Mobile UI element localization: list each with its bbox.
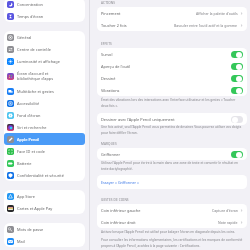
staticText: App Store [17, 194, 35, 199]
button[interactable]: Pincement [97, 7, 247, 19]
button[interactable]: Accessibilité [4, 97, 85, 109]
button[interactable]: Fond d'écran [4, 109, 85, 121]
staticText: Une fois activé, seul l'Apple Pencil vou… [101, 125, 247, 135]
button[interactable]: Activé [231, 63, 243, 70]
staticText: Batterie [17, 161, 32, 166]
button[interactable]: Concentration [4, 0, 85, 10]
staticText: Dessiner avec l'Apple Pencil uniquement [101, 117, 175, 122]
button[interactable]: Cartes et Apple Pay [4, 202, 85, 214]
staticText: Confidentialité et sécurité [17, 173, 64, 178]
staticText: Concentration [17, 2, 43, 7]
staticText: Utilisez l'Apple Pencil pour écrire à la… [101, 161, 247, 171]
staticText: Coin inférieur gauche [101, 208, 141, 213]
button[interactable]: Aperçu de l'outil [97, 60, 247, 72]
staticText: Vibrations [101, 88, 120, 93]
button[interactable]: Apple Pencil [4, 133, 85, 145]
staticText: Toucher 2 fois [101, 23, 127, 28]
staticText: GESTES DE COINS [101, 198, 129, 202]
button[interactable]: Survol [97, 48, 247, 60]
staticText: Siri et recherche [17, 125, 47, 130]
staticText: Aperçu de l'outil [101, 64, 131, 69]
button[interactable]: Essayer « Griffonner » [97, 175, 247, 189]
staticText: Fond d'écran [17, 113, 41, 118]
staticText: Cartes et Apple Pay [17, 206, 53, 211]
staticText: Mail [17, 239, 25, 244]
staticText: Capture d'écran [212, 208, 238, 213]
button[interactable]: Face ID et code [4, 145, 85, 157]
staticText: Général [17, 35, 32, 40]
button[interactable]: Désactivé [231, 116, 243, 123]
button[interactable]: Activé [231, 51, 243, 58]
button[interactable]: Écran d'accueil et bibliothèque d'apps [4, 67, 85, 85]
button[interactable]: Luminosité et affichage [4, 55, 85, 67]
button[interactable]: App Store [4, 190, 85, 202]
button[interactable]: Mots de passe [4, 223, 85, 235]
staticText: Essayer « Griffonner » [101, 180, 139, 185]
staticText: Note rapide [218, 220, 238, 225]
button[interactable]: Activé [231, 75, 243, 82]
button[interactable]: Activé [231, 87, 243, 94]
button[interactable]: Général [4, 31, 85, 43]
staticText: Survol [101, 52, 113, 57]
button[interactable]: Activé [231, 151, 243, 158]
staticText: Pour consulter les informations réglemen… [101, 238, 247, 248]
staticText: Coin inférieur droit [101, 220, 136, 225]
staticText: Basculer entre l'outil actif et la gomme [174, 23, 238, 28]
staticText: EFFETS [101, 42, 112, 46]
staticText: Temps d'écran [17, 14, 44, 19]
button[interactable]: Centre de contrôle [4, 43, 85, 55]
button[interactable]: Dessiner avec l'Apple Pencil uniquement [97, 113, 247, 125]
button[interactable]: Coin inférieur gauche [97, 204, 247, 216]
staticText: Luminosité et affichage [17, 59, 60, 64]
button[interactable]: Multitâche et gestes [4, 85, 85, 97]
staticText: Griffonner [101, 152, 121, 157]
staticText: MARQUES [101, 142, 117, 146]
staticText: Accessibilité [17, 101, 40, 106]
button[interactable]: Batterie [4, 157, 85, 169]
staticText: Face ID et code [17, 149, 45, 154]
staticText: Activez lorsque l'Apple Pencil est utili… [101, 230, 247, 234]
staticText: Multitâche et gestes [17, 89, 54, 94]
button[interactable]: Griffonner [97, 148, 247, 160]
button[interactable]: Temps d'écran [4, 10, 85, 22]
staticText: Pincement [101, 11, 121, 16]
staticText: Mots de passe [17, 227, 44, 232]
staticText: Émet des vibrations lors des interaction… [101, 98, 247, 108]
button[interactable]: Vibrations [97, 84, 247, 96]
button[interactable]: Mail [4, 235, 85, 247]
button[interactable]: Toucher 2 fois [97, 19, 247, 31]
button[interactable]: Siri et recherche [4, 121, 85, 133]
button[interactable]: Dessiné [97, 72, 247, 84]
staticText: Écran d'accueil et bibliothèque d'apps [17, 71, 54, 81]
button[interactable]: Confidentialité et sécurité [4, 169, 85, 181]
staticText: ACTIONS [101, 1, 116, 5]
button[interactable]: Coin inférieur droit [97, 216, 247, 228]
staticText: Afficher la palette d'outils [196, 11, 238, 16]
staticText: Dessiné [101, 76, 116, 81]
staticText: Apple Pencil [17, 137, 40, 142]
staticText: Centre de contrôle [17, 47, 51, 52]
